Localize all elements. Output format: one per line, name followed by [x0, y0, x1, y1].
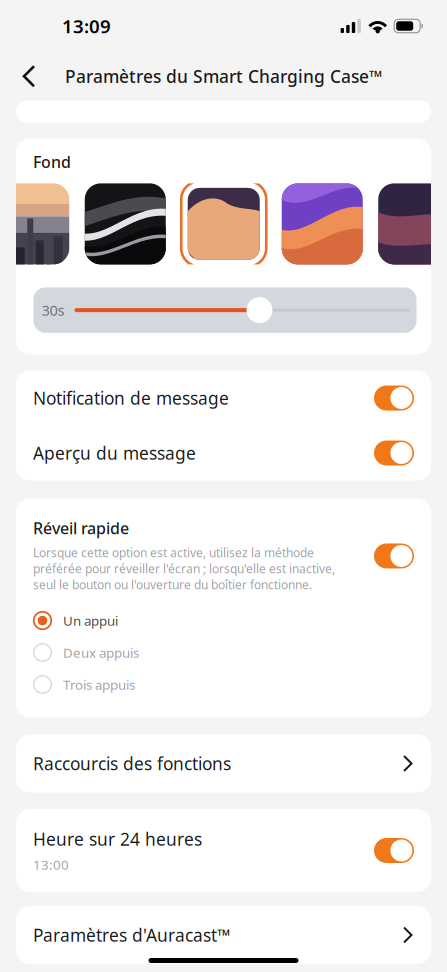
button[interactable]: Heure sur 24 heures — [16, 809, 431, 892]
button[interactable]: Aperçu du message — [16, 425, 431, 480]
staticText: 13:00 — [33, 856, 69, 873]
staticText: Trois appuis — [63, 676, 135, 693]
staticText: Réveil rapide — [33, 517, 129, 539]
button[interactable]: Back — [7, 54, 51, 98]
staticText: Deux appuis — [63, 644, 139, 661]
button[interactable]: Wallpaper dusk — [378, 183, 447, 264]
button[interactable]: Paramètres d'Auracast™ — [16, 906, 431, 964]
button[interactable]: Wallpaper purple — [282, 183, 363, 264]
button[interactable]: Wallpaper orange, selected — [181, 181, 266, 266]
staticText: Notification de message — [33, 386, 229, 409]
staticText: Fond — [33, 151, 71, 172]
staticText: 13:09 — [62, 14, 111, 38]
staticText: Raccourcis des fonctions — [33, 752, 231, 775]
button[interactable]: Notification de message — [16, 370, 431, 425]
staticText: Aperçu du message — [33, 441, 196, 464]
staticText: Paramètres du Smart Charging Case™ — [65, 65, 382, 88]
staticText: Lorsque cette option est active, utilise… — [33, 545, 335, 592]
staticText: 30s — [41, 300, 64, 320]
staticText: Heure sur 24 heures — [33, 828, 202, 851]
button[interactable]: Trois appuis — [16, 668, 431, 700]
button[interactable]: Raccourcis des fonctions — [16, 734, 431, 792]
button[interactable]: Deux appuis — [16, 636, 431, 668]
button[interactable]: Wallpaper black — [85, 183, 166, 264]
staticText: Paramètres d'Auracast™ — [33, 923, 230, 946]
button[interactable]: Un appui — [16, 604, 431, 636]
button[interactable]: Wallpaper city — [0, 183, 69, 264]
staticText: Un appui — [63, 612, 118, 629]
